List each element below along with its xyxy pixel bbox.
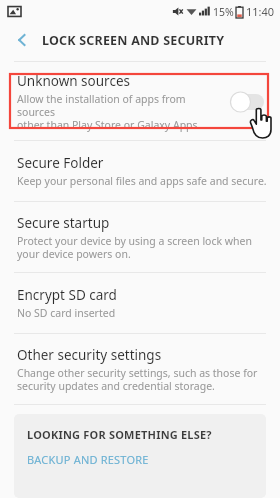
button[interactable]: BACKUP AND RESTORE xyxy=(27,442,253,469)
button[interactable]: Back xyxy=(8,26,36,54)
staticText: BACKUP AND RESTORE xyxy=(27,452,149,467)
staticText: No SD card inserted xyxy=(17,306,116,320)
staticText: Change other security settings, such as … xyxy=(17,366,258,393)
staticText: 11:40 xyxy=(246,4,275,19)
staticText: Unknown sources xyxy=(17,72,130,90)
staticText: Other security settings xyxy=(17,346,162,364)
staticText: Encrypt SD card xyxy=(17,286,117,304)
button[interactable]: Other security settings xyxy=(0,334,280,404)
staticText: 15% xyxy=(213,5,234,19)
staticText: Secure Folder xyxy=(17,154,104,172)
staticText: LOOKING FOR SOMETHING ELSE? xyxy=(27,427,212,442)
button[interactable]: Unknown sources xyxy=(0,62,280,140)
button[interactable]: Encrypt SD card xyxy=(0,273,280,333)
button[interactable]: Secure Folder xyxy=(0,141,280,201)
staticText: Protect your device by using a screen lo… xyxy=(17,234,252,261)
staticText: Allow the installation of apps from sour… xyxy=(17,92,222,132)
staticText: Keep your personal files and apps safe a… xyxy=(17,174,267,188)
staticText: LOCK SCREEN AND SECURITY xyxy=(42,32,225,49)
staticText: Secure startup xyxy=(17,214,110,232)
button[interactable]: Unknown sources toggle xyxy=(228,89,268,115)
button[interactable]: Secure startup xyxy=(0,202,280,272)
